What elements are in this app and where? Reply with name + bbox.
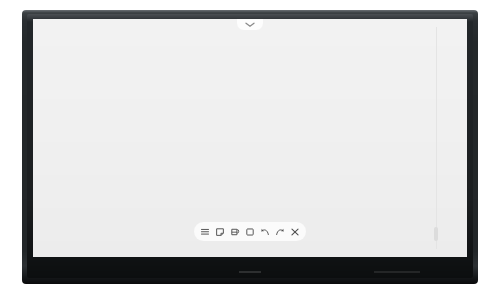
button[interactable]: Eraser	[229, 226, 241, 238]
button[interactable]: Redo	[274, 226, 286, 238]
button[interactable]: Note	[214, 226, 226, 238]
button[interactable]: Undo	[259, 226, 271, 238]
button[interactable]: Menu	[199, 226, 211, 238]
button[interactable]: Close	[289, 226, 301, 238]
button[interactable]: Open menu	[237, 19, 263, 30]
button[interactable]: Shape	[244, 226, 256, 238]
